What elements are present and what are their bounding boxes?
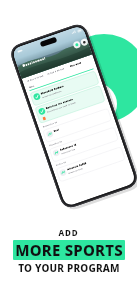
staticText: MORE SPORTS <box>15 240 123 260</box>
button[interactable]: Training program phone preview <box>30 18 120 218</box>
button[interactable]: ADD <box>0 227 137 275</box>
staticText: TO YOUR PROGRAM <box>18 261 120 275</box>
staticText: ADD <box>58 227 79 238</box>
